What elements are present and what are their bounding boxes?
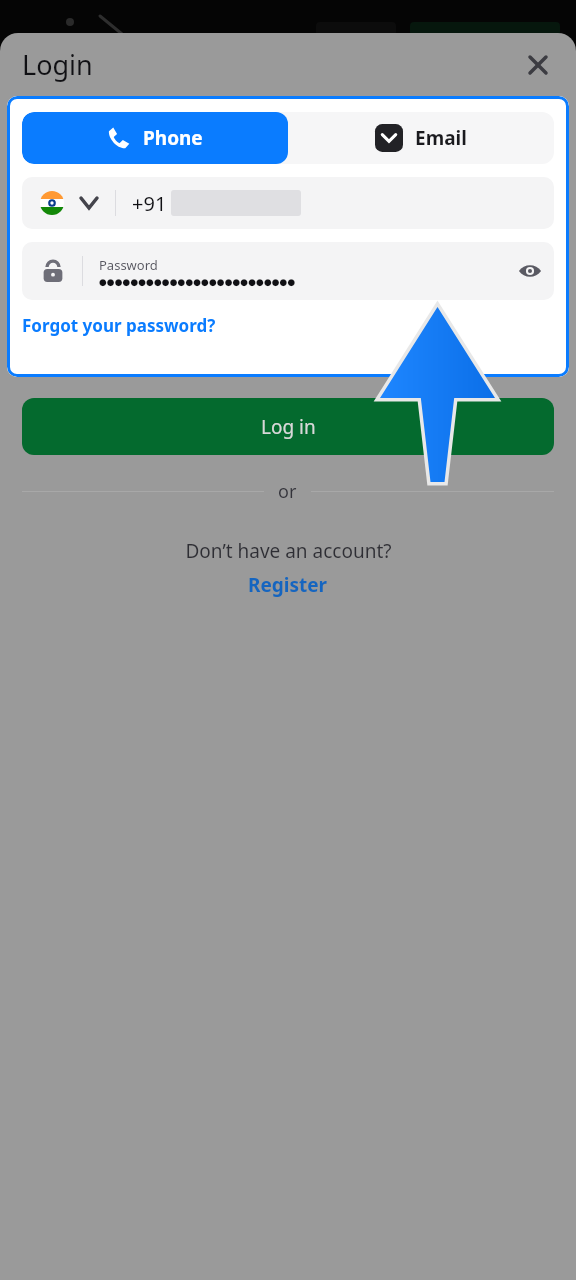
button[interactable]: Register	[248, 572, 328, 598]
staticText: Log in	[261, 414, 316, 440]
button[interactable]: Show password	[512, 253, 548, 289]
staticText: Login	[22, 46, 93, 83]
button[interactable]: Email	[288, 112, 554, 164]
staticText: Email	[415, 125, 467, 151]
staticText: Phone	[143, 125, 203, 151]
button[interactable]: Forgot your password?	[22, 314, 216, 337]
button[interactable]: Log in	[22, 398, 554, 455]
button[interactable]: Password	[22, 242, 554, 300]
button[interactable]: Close	[522, 49, 554, 81]
staticText: +91	[132, 190, 167, 217]
staticText: Password	[99, 256, 158, 274]
staticText: Forgot your password?	[22, 314, 216, 337]
button[interactable]: +91	[22, 177, 554, 229]
staticText: Register	[248, 572, 328, 598]
button[interactable]: Phone	[22, 112, 288, 164]
staticText: Don’t have an account?	[185, 538, 392, 564]
staticText: ●●●●●●●●●●●●●●●●●●●●●●●●●	[99, 277, 296, 287]
staticText: or	[278, 479, 297, 504]
